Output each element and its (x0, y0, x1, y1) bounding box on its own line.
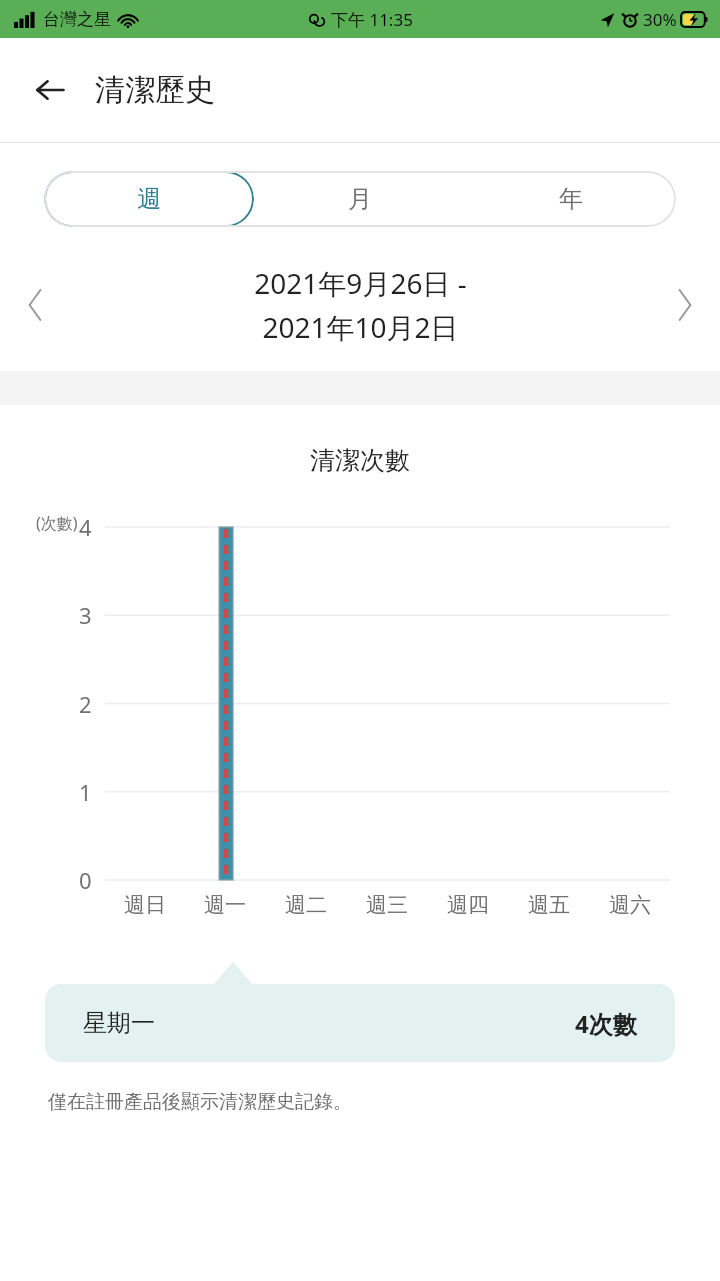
staticText: 週五 (528, 892, 570, 918)
staticText: 下午 11:35 (331, 8, 413, 31)
staticText: 僅在註冊產品後顯示清潔歷史記錄。 (48, 1090, 352, 1114)
staticText: 星期一 (83, 1008, 155, 1038)
button[interactable]: 星期一 (45, 984, 675, 1062)
staticText: 週一 (204, 892, 246, 918)
button[interactable]: Back (24, 64, 76, 116)
staticText: (次數) (36, 512, 78, 534)
staticText: 2 (79, 689, 92, 719)
button[interactable]: 週 (44, 171, 254, 227)
staticText: 2021年10月2日 (262, 308, 459, 346)
staticText: 4 (79, 512, 92, 542)
staticText: 週四 (447, 892, 489, 918)
staticText: 週 (137, 184, 161, 214)
button[interactable]: Next (650, 249, 720, 361)
staticText: 週二 (285, 892, 327, 918)
staticText: 週六 (609, 892, 651, 918)
staticText: 年 (559, 184, 583, 214)
staticText: 清潔次數 (310, 445, 410, 476)
button[interactable]: 月 (254, 171, 465, 227)
staticText: 月 (348, 184, 372, 214)
staticText: 3 (79, 600, 92, 630)
staticText: 30% (643, 8, 677, 31)
staticText: 清潔歷史 (95, 71, 215, 109)
staticText: 4次數 (575, 1007, 637, 1040)
staticText: 2021年9月26日 - (254, 264, 467, 302)
staticText: 台灣之星 (43, 9, 111, 30)
staticText: 1 (79, 777, 92, 807)
staticText: 0 (79, 865, 92, 895)
button[interactable]: 年 (465, 171, 676, 227)
button[interactable]: Previous (0, 249, 70, 361)
staticText: 週日 (124, 892, 166, 918)
staticText: 週三 (366, 892, 408, 918)
